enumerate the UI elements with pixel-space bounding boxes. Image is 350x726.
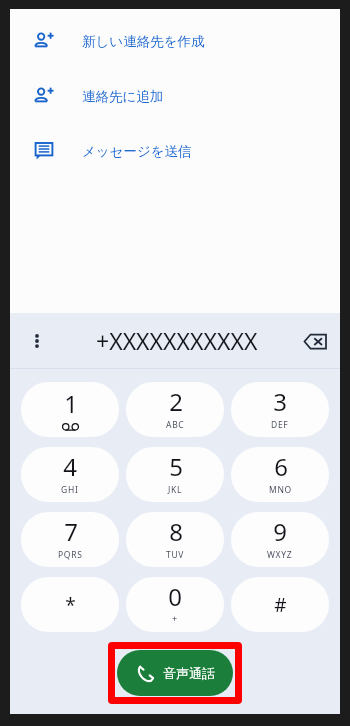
button[interactable]: More options bbox=[24, 328, 50, 354]
button[interactable]: Backspace bbox=[300, 326, 330, 356]
staticText: 6 bbox=[274, 450, 288, 483]
staticText: WXYZ bbox=[267, 549, 293, 561]
button[interactable]: 音声通話 bbox=[117, 650, 233, 696]
staticText: 5 bbox=[169, 450, 183, 483]
button[interactable]: 5 bbox=[126, 447, 224, 502]
staticText: GHI bbox=[61, 484, 79, 496]
staticText: 7 bbox=[64, 515, 78, 548]
button[interactable]: 連絡先に追加 bbox=[10, 78, 340, 114]
button[interactable]: 2 bbox=[126, 382, 224, 437]
staticText: メッセージを送信 bbox=[82, 143, 192, 160]
staticText: 9 bbox=[273, 515, 287, 548]
button[interactable]: * bbox=[21, 577, 119, 632]
staticText: # bbox=[274, 592, 287, 618]
staticText: TUV bbox=[166, 549, 185, 561]
staticText: 0 bbox=[168, 580, 182, 613]
staticText: 1 bbox=[64, 387, 78, 420]
staticText: ABC bbox=[166, 419, 185, 431]
staticText: 4 bbox=[63, 450, 77, 483]
staticText: 音声通話 bbox=[163, 665, 215, 681]
staticText: PQRS bbox=[58, 549, 83, 561]
staticText: 3 bbox=[273, 385, 287, 418]
staticText: + bbox=[172, 612, 178, 624]
button[interactable]: 0 bbox=[126, 577, 224, 632]
button[interactable]: 4 bbox=[21, 447, 119, 502]
staticText: JKL bbox=[168, 484, 183, 496]
staticText: 8 bbox=[169, 515, 183, 548]
button[interactable]: 9 bbox=[231, 512, 329, 567]
button[interactable]: 8 bbox=[126, 512, 224, 567]
button[interactable]: メッセージを送信 bbox=[10, 133, 340, 169]
staticText: * bbox=[65, 592, 76, 618]
button[interactable]: # bbox=[231, 577, 329, 632]
staticText: MNO bbox=[269, 484, 292, 496]
button[interactable]: 6 bbox=[231, 447, 329, 502]
button[interactable]: 3 bbox=[231, 382, 329, 437]
staticText: +XXXXXXXXXXX bbox=[96, 325, 258, 356]
button[interactable]: 1 bbox=[21, 382, 119, 437]
staticText: 2 bbox=[169, 385, 183, 418]
staticText: DEF bbox=[271, 419, 289, 431]
button[interactable]: 新しい連絡先を作成 bbox=[10, 23, 340, 59]
staticText: 連絡先に追加 bbox=[82, 88, 164, 105]
button[interactable]: 7 bbox=[21, 512, 119, 567]
staticText: 新しい連絡先を作成 bbox=[82, 33, 205, 50]
